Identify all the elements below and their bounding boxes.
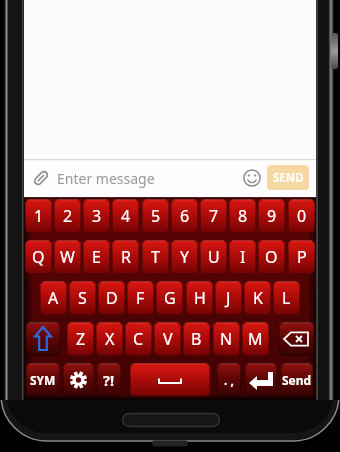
button[interactable]: I	[229, 240, 256, 274]
button[interactable]: 8	[229, 199, 256, 233]
button[interactable]: F	[127, 281, 154, 315]
button[interactable]: Send	[281, 363, 313, 397]
staticText: H	[194, 287, 206, 309]
button[interactable]: J	[215, 281, 242, 315]
staticText: V	[163, 328, 173, 350]
button[interactable]: 0	[288, 199, 315, 233]
button[interactable]: SEND	[267, 165, 309, 190]
staticText: F	[136, 287, 145, 309]
staticText: S	[78, 287, 87, 309]
button[interactable]: Enter message	[57, 166, 207, 190]
button[interactable]: Y	[171, 240, 198, 274]
staticText: 8	[238, 205, 248, 227]
button[interactable]: X	[96, 322, 123, 356]
button[interactable]: 2	[54, 199, 81, 233]
staticText: O	[265, 246, 278, 268]
staticText: 9	[267, 205, 277, 227]
staticText: W	[60, 246, 75, 268]
button[interactable]: 4	[112, 199, 139, 233]
staticText: J	[226, 287, 231, 309]
staticText: B	[191, 328, 202, 350]
staticText: N	[220, 328, 233, 350]
staticText: 7	[209, 205, 219, 227]
button[interactable]: O	[258, 240, 285, 274]
staticText: 1	[34, 205, 44, 227]
button[interactable]: 5	[142, 199, 169, 233]
staticText: SEND	[273, 170, 304, 186]
button[interactable]	[245, 363, 277, 397]
button[interactable]: C	[125, 322, 152, 356]
button[interactable]: B	[183, 322, 210, 356]
button[interactable]: K	[244, 281, 271, 315]
button[interactable]: H	[186, 281, 213, 315]
button[interactable]: U	[200, 240, 227, 274]
staticText: L	[282, 287, 291, 309]
button[interactable]	[30, 167, 52, 189]
staticText: R	[121, 246, 131, 268]
staticText: ?!	[103, 370, 115, 390]
button[interactable]: 7	[200, 199, 227, 233]
staticText: Enter message	[57, 169, 155, 188]
button[interactable]: SYM	[26, 363, 60, 397]
button[interactable]: S	[69, 281, 96, 315]
button[interactable]	[63, 363, 94, 397]
button[interactable]	[243, 169, 261, 187]
button[interactable]: 3	[83, 199, 110, 233]
staticText: K	[253, 287, 263, 309]
staticText: Y	[180, 246, 190, 268]
button[interactable]: R	[112, 240, 139, 274]
staticText: E	[92, 246, 101, 268]
staticText: D	[106, 287, 118, 309]
staticText: 4	[121, 205, 131, 227]
staticText: SYM	[30, 372, 56, 388]
button[interactable]: 9	[258, 199, 285, 233]
staticText: 3	[92, 205, 102, 227]
staticText: U	[208, 246, 220, 268]
button[interactable]: W	[54, 240, 81, 274]
staticText: P	[297, 246, 307, 268]
staticText: 2	[63, 205, 73, 227]
button[interactable]: Q	[25, 240, 52, 274]
staticText: C	[133, 328, 144, 350]
button[interactable]: Z	[67, 322, 94, 356]
button[interactable]: ?!	[97, 363, 121, 397]
staticText: Send	[282, 372, 312, 388]
staticText: . ,	[224, 372, 234, 388]
button[interactable]: 6	[171, 199, 198, 233]
staticText: X	[105, 328, 115, 350]
button[interactable]: L	[273, 281, 300, 315]
staticText: 6	[180, 205, 190, 227]
button[interactable]: V	[154, 322, 181, 356]
staticText: M	[248, 328, 263, 350]
button[interactable]: 1	[25, 199, 52, 233]
button[interactable]	[130, 363, 210, 397]
staticText: 5	[151, 205, 161, 227]
button[interactable]: A	[40, 281, 67, 315]
staticText: A	[48, 287, 59, 309]
button[interactable]: D	[98, 281, 125, 315]
staticText: Z	[76, 328, 86, 350]
button[interactable]: G	[156, 281, 183, 315]
staticText: T	[151, 246, 160, 268]
button[interactable]	[26, 322, 60, 356]
staticText: I	[240, 246, 246, 268]
staticText: 0	[297, 205, 307, 227]
button[interactable]: P	[288, 240, 315, 274]
button[interactable]	[279, 322, 314, 356]
button[interactable]: M	[242, 322, 269, 356]
staticText: G	[164, 287, 176, 309]
button[interactable]: N	[213, 322, 240, 356]
button[interactable]: T	[142, 240, 169, 274]
button[interactable]: . ,	[217, 363, 241, 397]
button[interactable]: E	[83, 240, 110, 274]
staticText: Q	[32, 246, 45, 268]
